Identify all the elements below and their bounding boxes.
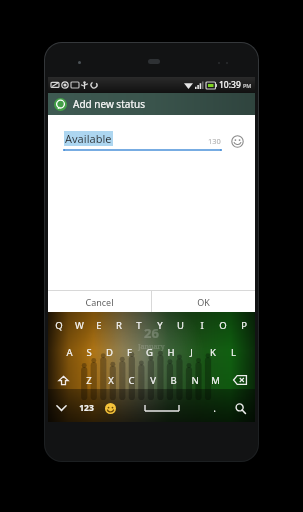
button[interactable]: Search [226, 394, 254, 422]
button[interactable]: Cancel [48, 291, 151, 312]
staticText: Available [65, 131, 112, 146]
button[interactable]: J [181, 339, 202, 366]
button[interactable]: X [100, 366, 121, 394]
button[interactable]: K [202, 339, 223, 366]
staticText: Z [86, 374, 92, 387]
button[interactable]: V [142, 366, 163, 394]
staticText: W [75, 319, 84, 332]
staticText: T [136, 319, 142, 332]
staticText: Q [55, 319, 63, 332]
staticText: X [108, 374, 114, 387]
button[interactable]: R [109, 312, 129, 339]
button[interactable]: Y [149, 312, 170, 339]
button[interactable]: M [205, 366, 226, 394]
button[interactable]: P [233, 312, 254, 339]
staticText: 130 [208, 136, 221, 146]
staticText: E [96, 319, 102, 332]
staticText: C [128, 374, 135, 387]
staticText: Add new status [73, 97, 145, 111]
staticText: K [210, 346, 216, 359]
staticText: Y [157, 319, 163, 332]
button[interactable]: B [163, 366, 184, 394]
staticText: M [211, 374, 220, 387]
staticText: D [106, 346, 113, 359]
button[interactable]: Space [122, 394, 202, 422]
button[interactable]: Shift [49, 366, 78, 394]
button[interactable]: Hide keyboard [49, 394, 74, 422]
staticText: OK [197, 296, 210, 308]
button[interactable]: L [223, 339, 244, 366]
button[interactable]: A [59, 339, 79, 366]
staticText: . [213, 401, 216, 415]
staticText: F [127, 346, 132, 359]
staticText: H [167, 346, 175, 359]
button[interactable]: Backspace [226, 366, 254, 394]
staticText: N [191, 374, 199, 387]
button[interactable]: Q [49, 312, 69, 339]
staticText: S [86, 346, 92, 359]
staticText: O [219, 319, 227, 332]
button[interactable]: S [79, 339, 99, 366]
button[interactable]: I [191, 312, 212, 339]
staticText: January [138, 342, 165, 352]
button[interactable]: H [160, 339, 181, 366]
staticText: 10:39 [219, 79, 241, 91]
button[interactable]: U [170, 312, 191, 339]
button[interactable]: Emoji [230, 134, 245, 149]
button[interactable]: Emoji keyboard [98, 394, 122, 422]
staticText: G [146, 346, 153, 359]
staticText: J [190, 346, 193, 359]
button[interactable]: G [139, 339, 160, 366]
button[interactable]: D [99, 339, 119, 366]
staticText: L [231, 346, 236, 359]
button[interactable]: T [129, 312, 149, 339]
staticText: R [116, 319, 122, 332]
button[interactable]: 123 [74, 394, 98, 422]
button[interactable]: W [69, 312, 89, 339]
button[interactable]: O [212, 312, 233, 339]
button[interactable]: Z [78, 366, 100, 394]
staticText: PM [243, 82, 252, 89]
button[interactable]: E [89, 312, 109, 339]
staticText: B [170, 374, 177, 387]
button[interactable]: OK [152, 291, 255, 312]
button[interactable]: N [184, 366, 205, 394]
staticText: V [150, 374, 156, 387]
button[interactable]: . [202, 394, 226, 422]
staticText: 26 [144, 324, 159, 342]
staticText: I [200, 319, 204, 332]
button[interactable]: F [119, 339, 139, 366]
staticText: P [241, 319, 247, 332]
staticText: A [66, 346, 73, 359]
button[interactable]: C [121, 366, 142, 394]
staticText: Cancel [85, 296, 114, 308]
staticText: 123 [79, 402, 94, 414]
staticText: U [177, 319, 184, 332]
